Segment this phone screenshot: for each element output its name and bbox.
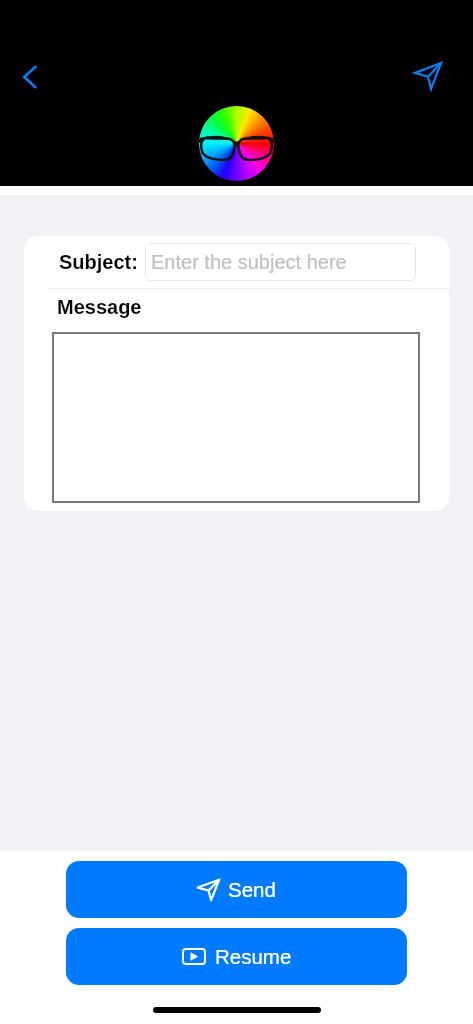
button[interactable]: Profile avatar <box>199 106 274 181</box>
button[interactable]: Send message <box>414 62 442 90</box>
staticText: Send <box>228 878 276 901</box>
button[interactable]: Back <box>11 60 45 94</box>
button[interactable]: Resume <box>66 928 407 985</box>
staticText: Enter the subject here <box>151 251 347 273</box>
button[interactable]: Send <box>66 861 407 918</box>
button[interactable] <box>52 332 420 503</box>
staticText: Resume <box>215 945 292 968</box>
staticText: Message <box>57 296 142 318</box>
button[interactable]: Enter the subject here <box>145 243 416 281</box>
staticText: Subject: <box>59 251 138 273</box>
